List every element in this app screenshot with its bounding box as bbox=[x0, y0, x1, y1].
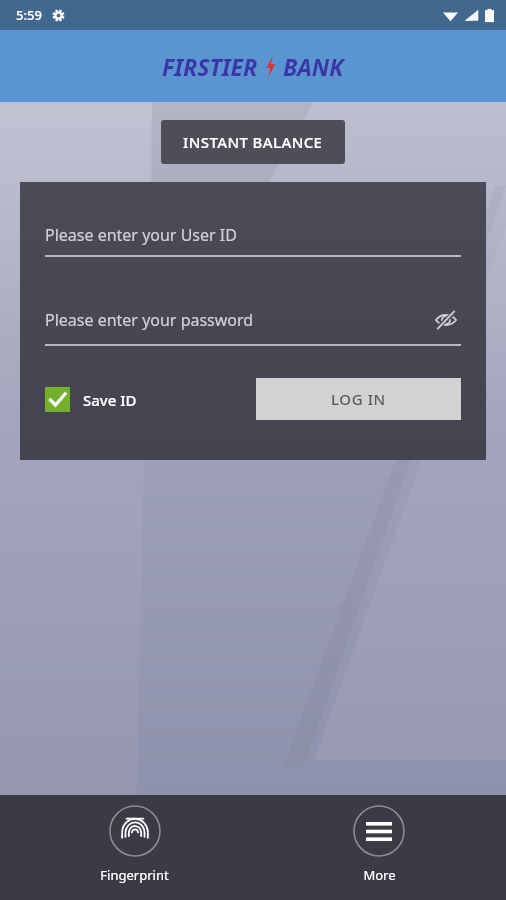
staticText: 5:59 bbox=[16, 6, 42, 24]
staticText: LOG IN bbox=[331, 389, 386, 409]
staticText: Please enter your password bbox=[45, 309, 431, 331]
staticText: Please enter your User ID bbox=[45, 224, 461, 246]
button[interactable]: Show password bbox=[431, 305, 461, 335]
staticText: INSTANT BALANCE bbox=[183, 132, 323, 152]
staticText: FIRSTIER bbox=[162, 51, 258, 82]
staticText: BANK bbox=[283, 51, 344, 82]
button[interactable]: Save ID bbox=[45, 387, 137, 412]
staticText: More bbox=[363, 866, 396, 884]
staticText: Save ID bbox=[83, 390, 137, 410]
button[interactable]: Please enter your User ID bbox=[45, 224, 461, 257]
button[interactable]: Please enter your password bbox=[45, 305, 461, 346]
button[interactable]: LOG IN bbox=[256, 378, 461, 420]
button[interactable]: More bbox=[347, 795, 411, 890]
button[interactable]: INSTANT BALANCE bbox=[161, 120, 345, 164]
staticText: Fingerprint bbox=[100, 866, 169, 884]
button[interactable]: Fingerprint bbox=[94, 795, 175, 890]
